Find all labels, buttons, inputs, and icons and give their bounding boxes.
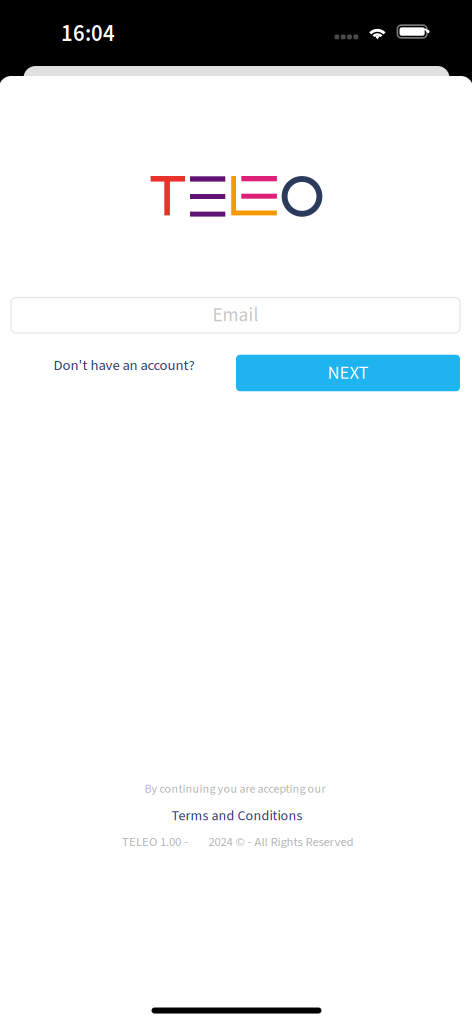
staticText: 2024 © - All Rights Reserved (208, 833, 353, 851)
staticText: NEXT (327, 360, 368, 386)
button[interactable]: Don't have an account? (49, 347, 199, 383)
staticText: By continuing you are accepting our (144, 780, 325, 798)
staticText: Don't have an account? (53, 355, 194, 376)
staticText: TELEO 1.00 - (122, 833, 188, 851)
staticText: 16:04 (61, 18, 115, 50)
button[interactable]: Terms and Conditions (162, 805, 312, 827)
staticText: Email (212, 301, 258, 329)
staticText: Terms and Conditions (171, 806, 302, 826)
button[interactable]: NEXT (236, 355, 460, 391)
